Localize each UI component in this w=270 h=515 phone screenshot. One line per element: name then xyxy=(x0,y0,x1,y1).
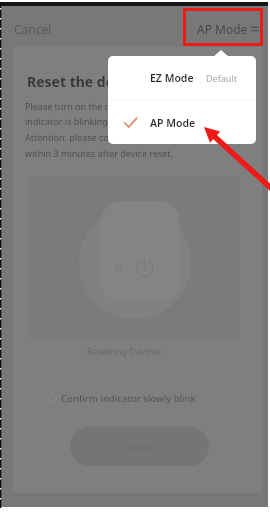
button[interactable]: AP Mode xyxy=(108,101,256,144)
staticText: Default xyxy=(206,72,237,84)
button[interactable]: Cancel xyxy=(10,18,56,40)
button[interactable]: EZ Mode xyxy=(108,56,256,100)
button[interactable]: AP Mode xyxy=(193,18,263,40)
staticText: EZ Mode xyxy=(150,71,194,85)
staticText: AP Mode xyxy=(150,116,196,130)
staticText: Reset the device xyxy=(27,72,142,91)
staticText: Confirm indicator slowly blink xyxy=(61,392,196,405)
button[interactable]: Confirm indicator slowly blink xyxy=(46,390,198,407)
staticText: Cancel xyxy=(14,21,52,37)
staticText: Please turn on the device and confirm th… xyxy=(25,100,202,160)
staticText: AP Mode xyxy=(197,21,248,37)
staticText: Resetting Devices xyxy=(87,345,162,357)
